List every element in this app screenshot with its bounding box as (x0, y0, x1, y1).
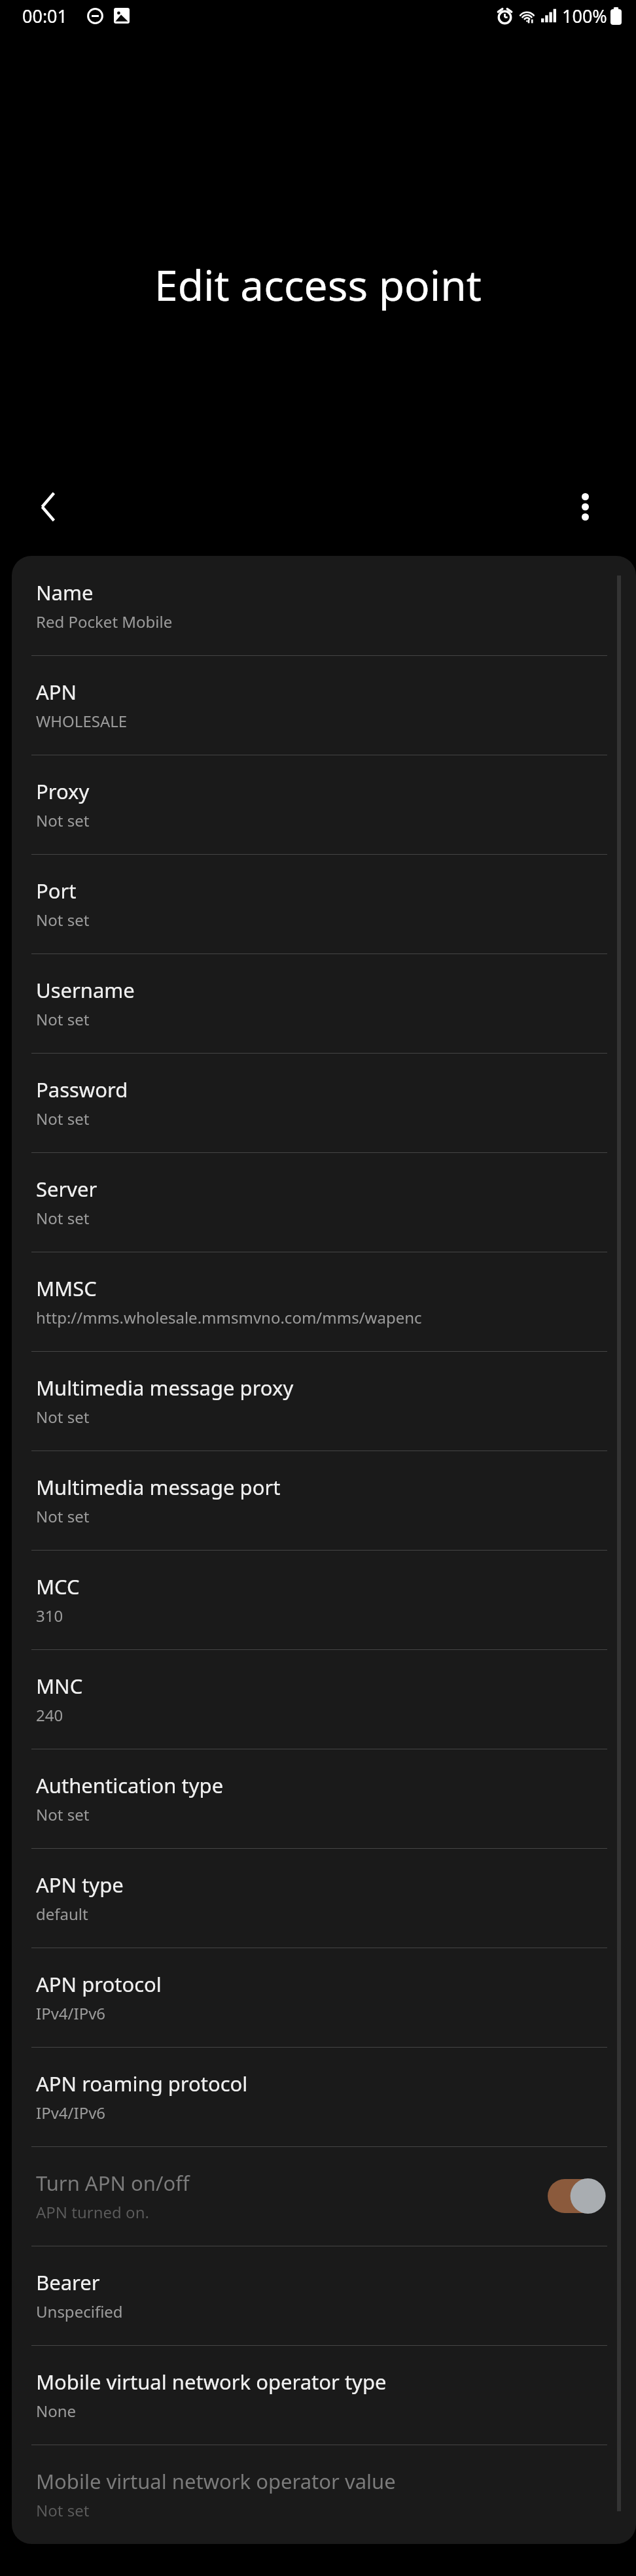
button[interactable]: Port (12, 854, 636, 953)
button[interactable]: Mobile virtual network operator value (12, 2445, 636, 2544)
staticText: APN protocol (36, 1970, 162, 1998)
staticText: Edit access point (154, 256, 482, 313)
staticText: default (36, 1903, 88, 1925)
staticText: APN type (36, 1871, 124, 1898)
staticText: Red Pocket Mobile (36, 611, 173, 632)
staticText: MMSC (36, 1275, 97, 1302)
staticText: IPv4/IPv6 (36, 2102, 106, 2123)
button[interactable]: Bearer (12, 2246, 636, 2345)
button[interactable]: MCC (12, 1550, 636, 1649)
button[interactable]: APN type (12, 1848, 636, 1948)
button[interactable]: Proxy (12, 755, 636, 854)
button[interactable]: Back (25, 483, 72, 530)
staticText: Proxy (36, 778, 90, 805)
staticText: MCC (36, 1573, 80, 1600)
staticText: 240 (36, 1704, 63, 1726)
staticText: Not set (36, 909, 90, 931)
staticText: Unspecified (36, 2301, 123, 2322)
staticText: http://mms.wholesale.mmsmvno.com/mms/wap… (36, 1307, 422, 1328)
staticText: 00:01 (22, 4, 68, 28)
button[interactable]: APN roaming protocol (12, 2047, 636, 2146)
button[interactable]: More options (561, 483, 609, 530)
button[interactable]: MMSC (12, 1252, 636, 1351)
staticText: Multimedia message port (36, 1473, 281, 1501)
button[interactable]: Turn APN on/off (12, 2146, 636, 2246)
staticText: Server (36, 1175, 97, 1203)
staticText: None (36, 2400, 77, 2422)
staticText: Password (36, 1076, 128, 1103)
staticText: 100% (562, 4, 607, 28)
staticText: Port (36, 877, 77, 904)
staticText: Mobile virtual network operator value (36, 2467, 396, 2495)
button[interactable]: Server (12, 1152, 636, 1252)
staticText: Not set (36, 1008, 90, 1030)
staticText: Not set (36, 1207, 90, 1229)
staticText: Not set (36, 1804, 90, 1825)
staticText: Mobile virtual network operator type (36, 2368, 387, 2396)
staticText: Not set (36, 2499, 90, 2521)
staticText: APN (36, 678, 77, 706)
staticText: Username (36, 976, 135, 1004)
staticText: APN roaming protocol (36, 2070, 248, 2097)
button[interactable]: APN (12, 655, 636, 755)
button[interactable]: Authentication type (12, 1749, 636, 1848)
staticText: Authentication type (36, 1772, 224, 1799)
button[interactable]: Multimedia message port (12, 1451, 636, 1550)
staticText: Turn APN on/off (36, 2169, 190, 2197)
staticText: Not set (36, 810, 90, 831)
button[interactable]: Multimedia message proxy (12, 1351, 636, 1451)
staticText: Not set (36, 1108, 90, 1129)
staticText: APN turned on. (36, 2201, 149, 2223)
staticText: Bearer (36, 2269, 100, 2296)
staticText: 310 (36, 1605, 63, 1626)
staticText: MNC (36, 1672, 83, 1700)
staticText: Not set (36, 1406, 90, 1428)
staticText: IPv4/IPv6 (36, 2002, 106, 2024)
button[interactable]: Mobile virtual network operator type (12, 2345, 636, 2445)
button[interactable]: Turn APN on/off (548, 2176, 605, 2216)
button[interactable]: Password (12, 1053, 636, 1152)
staticText: Multimedia message proxy (36, 1374, 294, 1401)
button[interactable]: MNC (12, 1649, 636, 1749)
button[interactable]: Name (12, 556, 636, 655)
button[interactable]: Username (12, 953, 636, 1053)
staticText: WHOLESALE (36, 710, 128, 732)
staticText: Not set (36, 1505, 90, 1527)
button[interactable]: APN protocol (12, 1948, 636, 2047)
staticText: Name (36, 579, 94, 606)
